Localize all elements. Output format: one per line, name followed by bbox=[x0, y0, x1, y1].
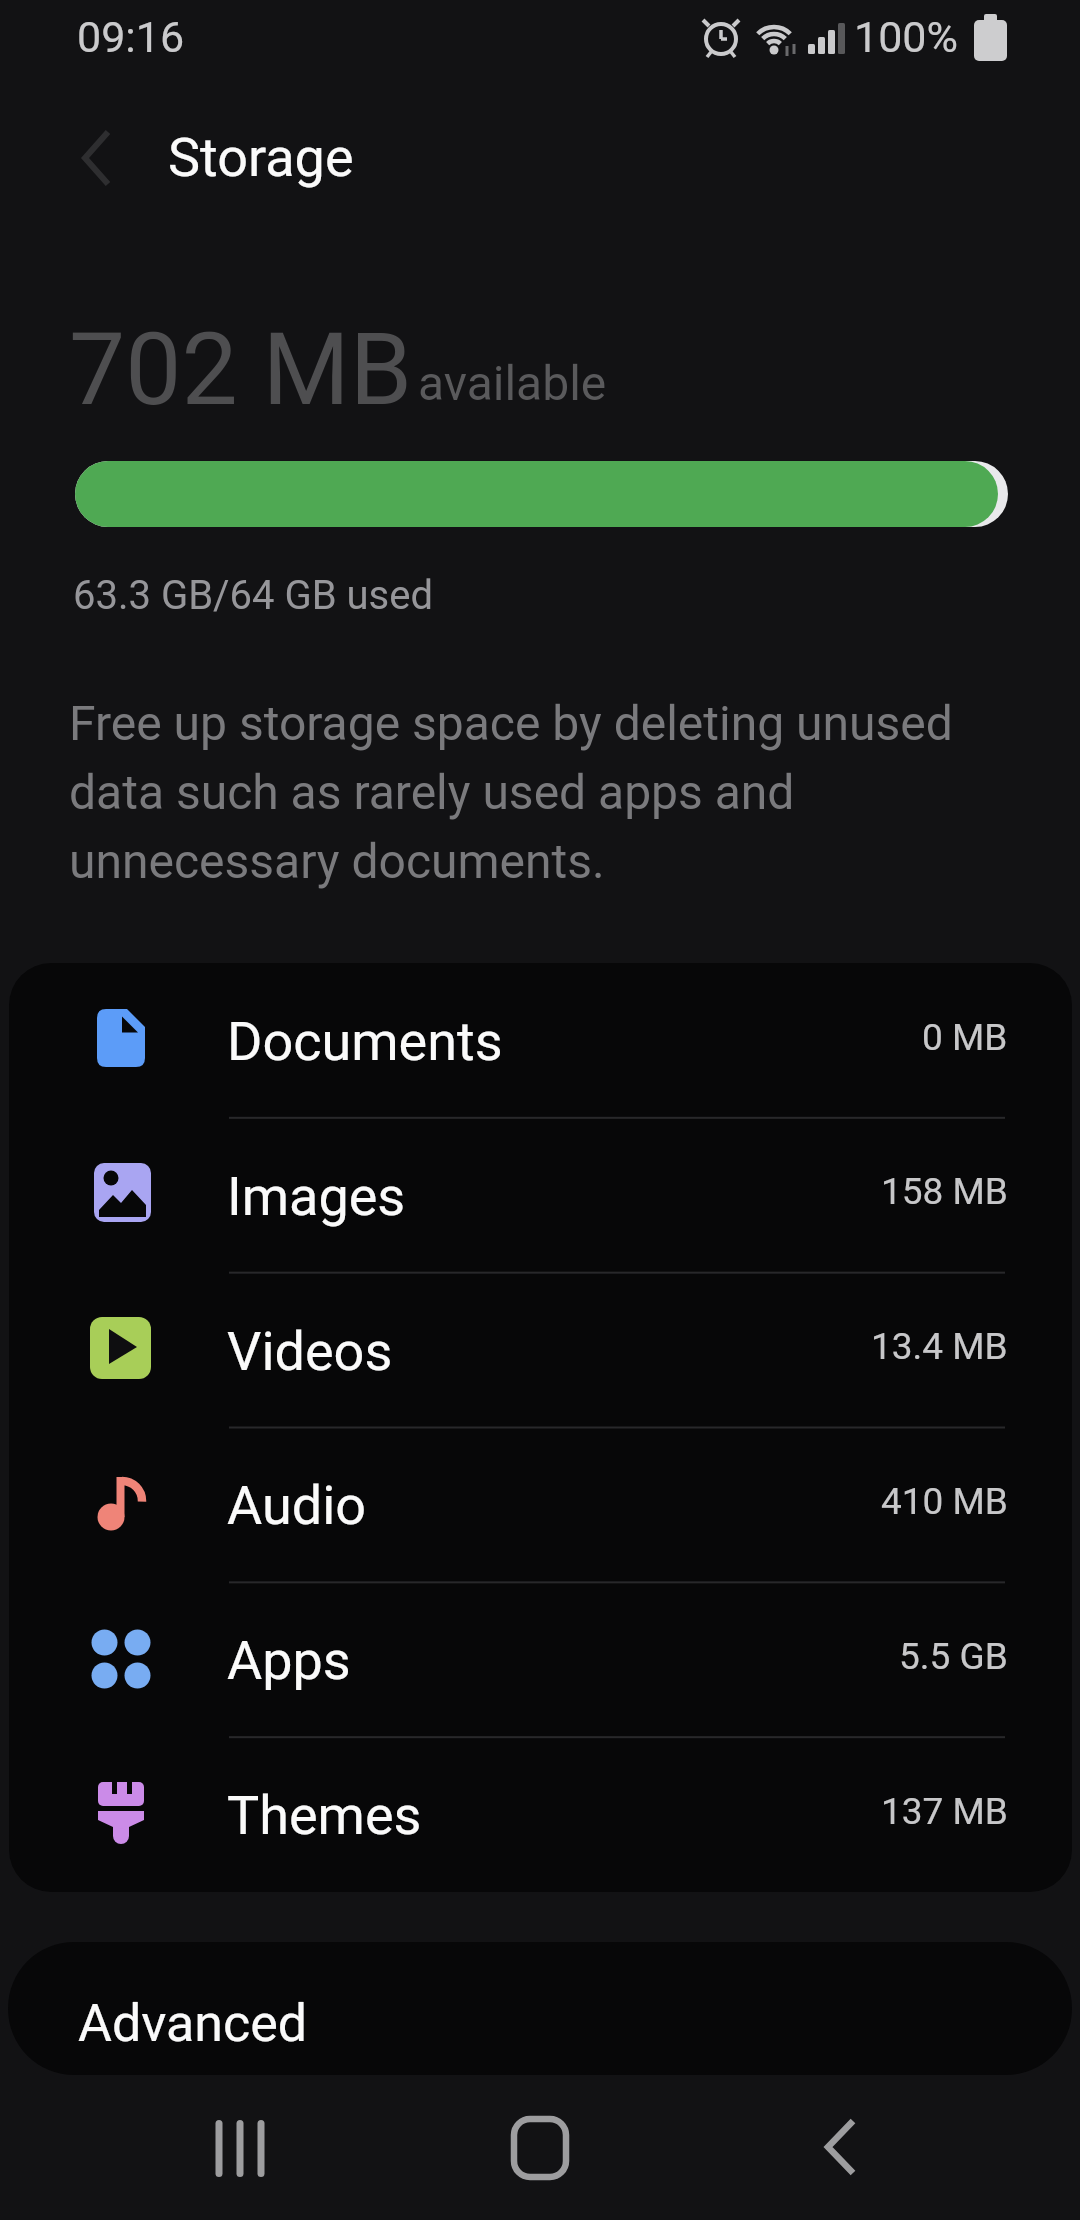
staticText: 63.3 GB/64 GB used bbox=[73, 572, 434, 619]
button[interactable]: 137 MB bbox=[9, 1737, 1072, 1891]
staticText: Documents bbox=[227, 1010, 503, 1073]
staticText: available bbox=[418, 355, 607, 411]
staticText: 702 MB bbox=[69, 311, 413, 428]
staticText: 09:16 bbox=[77, 12, 185, 62]
button[interactable] bbox=[776, 2100, 904, 2200]
staticText: 5.5 GB bbox=[899, 1635, 1008, 1678]
button[interactable] bbox=[176, 2100, 304, 2200]
staticText: Advanced bbox=[78, 1993, 308, 2054]
button[interactable] bbox=[476, 2100, 604, 2200]
button[interactable] bbox=[60, 120, 136, 196]
staticText: 100% bbox=[854, 12, 958, 62]
staticText: 410 MB bbox=[881, 1480, 1008, 1523]
staticText: Themes bbox=[227, 1784, 422, 1847]
button[interactable]: 158 MB bbox=[9, 1117, 1072, 1271]
button[interactable]: 410 MB bbox=[9, 1427, 1072, 1581]
staticText: 0 MB bbox=[922, 1016, 1008, 1059]
button[interactable]: 0 MB bbox=[9, 963, 1072, 1117]
button[interactable]: 5.5 GB bbox=[9, 1582, 1072, 1736]
button[interactable]: Advanced bbox=[8, 1942, 1072, 2075]
staticText: Audio bbox=[227, 1474, 367, 1537]
staticText: 137 MB bbox=[881, 1790, 1008, 1833]
staticText: Free up storage space by deleting unused… bbox=[69, 695, 953, 889]
staticText: Storage bbox=[168, 126, 354, 189]
staticText: 13.4 MB bbox=[871, 1325, 1008, 1368]
staticText: Images bbox=[227, 1165, 406, 1228]
staticText: Apps bbox=[227, 1629, 351, 1692]
staticText: Videos bbox=[227, 1320, 393, 1383]
button[interactable]: 13.4 MB bbox=[9, 1272, 1072, 1426]
staticText: 158 MB bbox=[881, 1170, 1008, 1213]
